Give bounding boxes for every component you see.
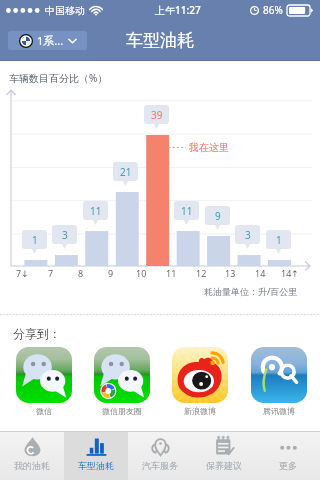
staticText: 微信朋友圈 [102,406,142,416]
button[interactable]: 更多 [256,431,320,480]
staticText: 11 [90,204,102,218]
staticText: 3 [62,228,68,242]
staticText: 9 [108,267,114,279]
button[interactable]: 腾讯微博 [251,347,307,416]
staticText: 13 [225,267,236,279]
staticText: 21 [120,165,132,179]
button[interactable]: 我的油耗 [0,431,64,480]
staticText: 我的油耗 [14,460,50,471]
staticText: 9 [215,209,221,223]
button[interactable]: 1系... [8,31,87,50]
staticText: 8 [78,267,84,279]
button[interactable]: 新浪微博 [172,347,228,416]
staticText: 14↑ [281,267,299,279]
staticText: 车型油耗 [126,30,194,51]
button[interactable]: 保养建议 [192,431,256,480]
staticText: 汽车服务 [142,460,178,471]
staticText: 腾讯微博 [263,406,295,416]
staticText: 14 [255,267,266,279]
staticText: 86% [263,3,283,17]
staticText: 上午11:27 [155,3,201,17]
staticText: 车型油耗 [78,460,114,471]
staticText: 7 [48,267,54,279]
staticText: 12 [196,267,207,279]
staticText: 分享到： [13,326,61,341]
staticText: 7↓ [16,267,29,279]
button[interactable]: 微信 [16,347,72,416]
button[interactable]: 车型油耗 [64,431,128,480]
staticText: 新浪微博 [184,406,216,416]
staticText: 我在这里 [189,141,229,154]
staticText: 1系... [37,33,64,48]
staticText: 中国移动 [45,4,85,17]
staticText: 耗油量单位：升/百公里 [204,285,298,297]
button[interactable]: 汽车服务 [128,431,192,480]
staticText: 1 [32,233,38,247]
staticText: 10 [136,267,147,279]
staticText: 车辆数目百分比（%） [9,71,108,85]
staticText: 3 [245,228,251,242]
staticText: 39 [151,108,163,122]
staticText: 11 [166,267,177,279]
staticText: 微信 [36,406,52,416]
staticText: 保养建议 [206,460,242,471]
staticText: 1 [276,233,282,247]
staticText: 11 [181,204,193,218]
staticText: 更多 [279,460,297,471]
button[interactable]: 微信朋友圈 [94,347,150,416]
